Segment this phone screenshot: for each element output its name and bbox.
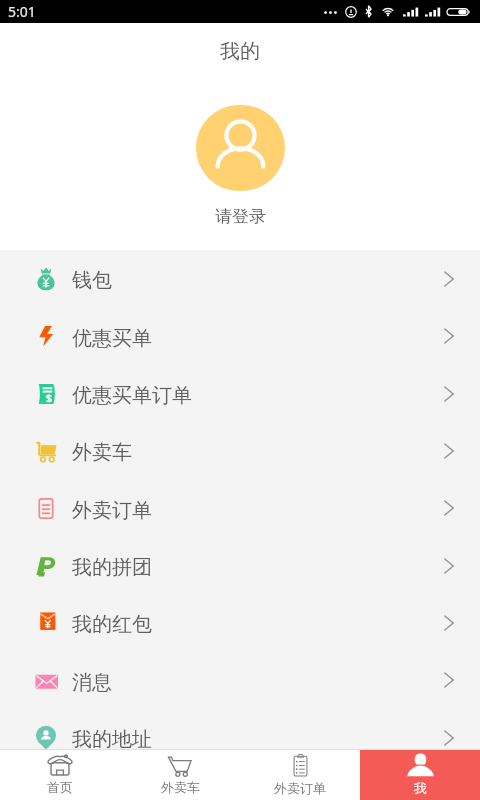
staticText: 5:01: [8, 2, 36, 21]
staticText: 首页: [47, 779, 73, 795]
button[interactable]: 我的红包: [0, 594, 480, 651]
staticText: 外卖车: [72, 440, 132, 465]
staticText: 外卖订单: [72, 498, 152, 523]
button[interactable]: 外卖车: [120, 750, 240, 800]
staticText: 外卖车: [161, 779, 200, 795]
button[interactable]: 我的拼团: [0, 537, 480, 594]
staticText: 消息: [72, 670, 112, 695]
staticText: 我的拼团: [72, 555, 152, 580]
button[interactable]: 外卖订单: [0, 479, 480, 537]
staticText: 优惠买单: [72, 326, 152, 351]
button[interactable]: 我的地址: [0, 709, 480, 766]
button[interactable]: 消息: [0, 651, 480, 709]
staticText: 我的地址: [72, 727, 152, 752]
button[interactable]: 我的评价: [0, 766, 480, 800]
button[interactable]: Avatar: [196, 105, 285, 191]
staticText: 外卖订单: [274, 780, 326, 796]
button[interactable]: 优惠买单: [0, 307, 480, 365]
button[interactable]: 优惠买单订单: [0, 365, 480, 422]
button[interactable]: 我: [360, 750, 480, 800]
staticText: 钱包: [72, 268, 112, 293]
staticText: 我: [414, 780, 427, 796]
staticText: 我的: [220, 39, 260, 64]
button[interactable]: 钱包: [0, 250, 480, 307]
button[interactable]: 外卖订单: [240, 750, 360, 800]
button[interactable]: 外卖车: [0, 422, 480, 479]
staticText: 请登录: [215, 206, 266, 227]
staticText: 我的红包: [72, 612, 152, 637]
button[interactable]: 首页: [0, 750, 120, 800]
staticText: 优惠买单订单: [72, 383, 192, 408]
